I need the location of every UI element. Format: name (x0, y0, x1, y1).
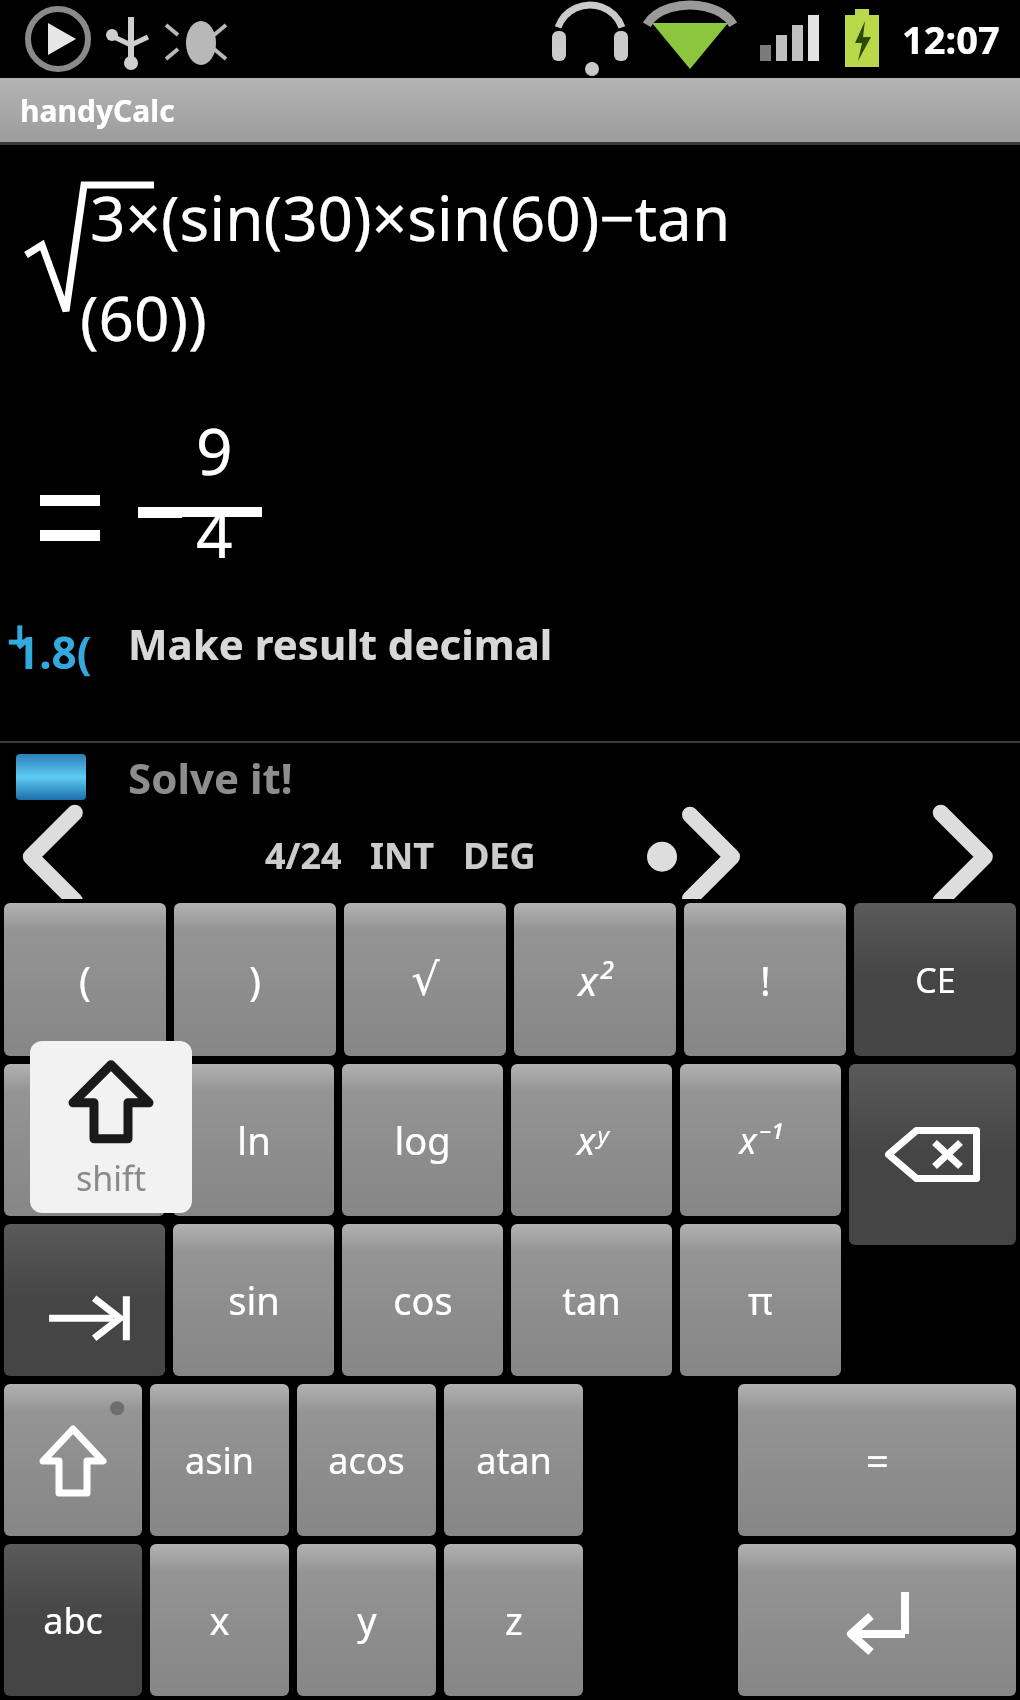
button[interactable]: √ (344, 903, 506, 1056)
button[interactable]: Shift preview (30, 1041, 192, 1213)
staticText: ( (79, 953, 91, 1007)
staticText: 4 (196, 490, 233, 577)
button[interactable]: asin (150, 1384, 289, 1536)
staticText: acos (328, 1436, 405, 1485)
button[interactable]: CE (854, 903, 1016, 1056)
button[interactable]: ! (684, 903, 846, 1056)
staticText: CE (915, 957, 956, 1003)
staticText: DEG (463, 831, 536, 880)
button[interactable]: Shift (4, 1384, 142, 1536)
staticText: 4/24 (265, 831, 342, 880)
button[interactable]: abc (4, 1544, 142, 1696)
staticText: sin (228, 1274, 280, 1326)
button[interactable]: Next (910, 811, 1020, 899)
staticText: y (357, 1594, 377, 1646)
staticText: ln (237, 1114, 271, 1166)
button[interactable]: Enter (738, 1544, 1016, 1696)
staticText: Make result decimal (128, 615, 553, 672)
staticText: = (866, 1433, 889, 1487)
staticText: INT (370, 831, 435, 880)
button[interactable]: ln (173, 1064, 334, 1216)
staticText: 9 (196, 407, 233, 494)
staticText: log (394, 1114, 451, 1166)
staticText: xʸ (577, 1114, 607, 1166)
button[interactable]: cos (342, 1224, 503, 1376)
button[interactable]: tan (511, 1224, 672, 1376)
button[interactable]: acos (297, 1384, 436, 1536)
staticText: ) (249, 953, 261, 1007)
staticText: √ (411, 954, 440, 1005)
button[interactable]: z (444, 1544, 583, 1696)
button[interactable]: log (342, 1064, 503, 1216)
staticText: asin (185, 1436, 254, 1485)
staticText: atan (476, 1436, 552, 1485)
staticText: cos (393, 1274, 453, 1326)
button[interactable]: Solve it! (0, 743, 1020, 811)
staticText: 12:07 (902, 13, 1000, 65)
staticText: (60)) (80, 275, 207, 359)
staticText: tan (562, 1274, 621, 1326)
button[interactable]: x (150, 1544, 289, 1696)
button[interactable]: atan (444, 1384, 583, 1536)
button[interactable]: sin (173, 1224, 334, 1376)
button[interactable]: Tab (4, 1224, 165, 1376)
staticText: z (505, 1594, 523, 1646)
button[interactable]: 1.8( (0, 593, 1020, 693)
button[interactable]: x⁻¹ (680, 1064, 841, 1216)
button[interactable]: ) (174, 903, 336, 1056)
staticText: π (748, 1274, 773, 1326)
button[interactable]: ( (4, 903, 166, 1056)
staticText: Solve it! (128, 749, 293, 806)
button[interactable]: Backspace (849, 1064, 1016, 1245)
button[interactable]: π (680, 1224, 841, 1376)
staticText: 1.8( (14, 622, 92, 682)
button[interactable]: x² (514, 903, 676, 1056)
staticText: x (209, 1594, 230, 1646)
staticText: handyCalc (20, 90, 175, 131)
button[interactable]: = (738, 1384, 1016, 1536)
button[interactable]: y (297, 1544, 436, 1696)
button[interactable]: xʸ (511, 1064, 672, 1216)
staticText: x² (578, 953, 612, 1007)
staticText: x⁻¹ (739, 1116, 782, 1165)
staticText: 3×(sin(30)×sin(60)−tan (90, 175, 731, 259)
button[interactable] (4, 1064, 165, 1216)
staticText: shift (76, 1155, 147, 1201)
button[interactable]: Previous (0, 811, 110, 899)
staticText: abc (43, 1596, 103, 1645)
button[interactable]: Next page (620, 811, 750, 899)
staticText: ! (760, 953, 771, 1007)
